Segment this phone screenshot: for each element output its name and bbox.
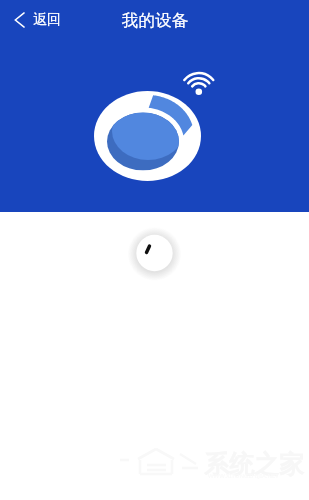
staticText: 返回 bbox=[33, 11, 61, 29]
staticText: 我的设备 bbox=[122, 10, 188, 31]
button[interactable]: 返回 bbox=[0, 5, 73, 35]
staticText: 系统之家 bbox=[204, 449, 304, 480]
button[interactable]: Loading bbox=[130, 228, 180, 278]
